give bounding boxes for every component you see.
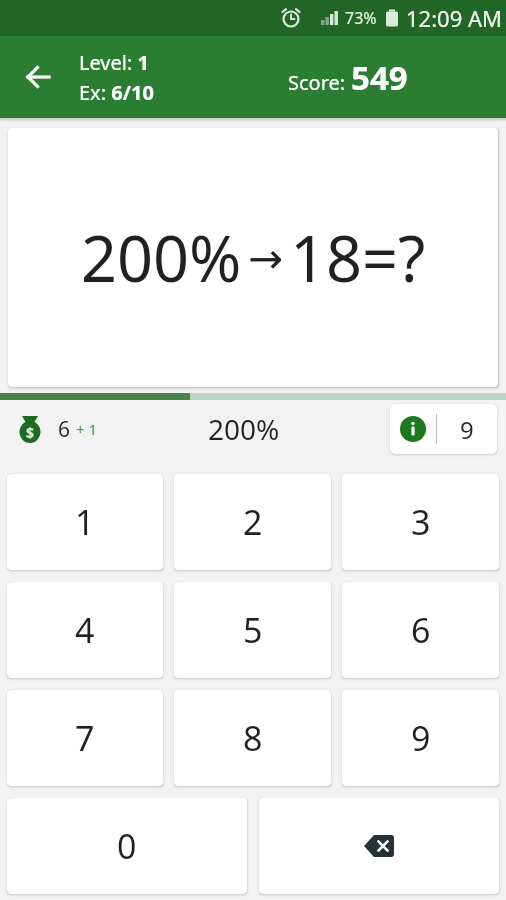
staticText: 4 bbox=[75, 607, 95, 653]
button[interactable]: 2 bbox=[174, 474, 331, 570]
staticText: 549 bbox=[351, 55, 408, 100]
staticText: 0 bbox=[117, 823, 137, 869]
button[interactable] bbox=[15, 53, 63, 101]
button[interactable]: 8 bbox=[174, 690, 331, 786]
staticText: + 1 bbox=[76, 419, 98, 439]
staticText: Score: bbox=[288, 69, 351, 96]
staticText: 1 bbox=[75, 499, 95, 545]
staticText: $ bbox=[26, 423, 35, 442]
button[interactable]: 7 bbox=[7, 690, 163, 786]
staticText: 3 bbox=[411, 499, 431, 545]
button[interactable]: 0 bbox=[7, 798, 247, 894]
staticText: → bbox=[248, 234, 284, 283]
staticText: 200% bbox=[208, 410, 280, 448]
staticText: 73% bbox=[345, 7, 377, 29]
staticText: 9 bbox=[460, 413, 474, 446]
staticText: 18=? bbox=[290, 215, 426, 301]
button[interactable]: 5 bbox=[174, 582, 331, 678]
staticText: 6 bbox=[411, 607, 431, 653]
button[interactable]: 3 bbox=[342, 474, 499, 570]
button[interactable]: 9 bbox=[390, 404, 497, 454]
staticText: 8 bbox=[243, 715, 263, 761]
staticText: 6 bbox=[58, 415, 71, 444]
staticText: 9 bbox=[411, 715, 431, 761]
button[interactable]: 4 bbox=[7, 582, 163, 678]
staticText: 12:09 AM bbox=[406, 3, 502, 33]
button[interactable] bbox=[259, 798, 499, 894]
staticText: 200% bbox=[81, 215, 242, 301]
staticText: 5 bbox=[243, 607, 263, 653]
staticText: Level: 1 bbox=[79, 49, 149, 76]
staticText: 7 bbox=[75, 715, 95, 761]
staticText: Ex: 6/10 bbox=[79, 79, 154, 106]
button[interactable]: 1 bbox=[7, 474, 163, 570]
button[interactable]: 6 bbox=[342, 582, 499, 678]
staticText: 2 bbox=[243, 499, 263, 545]
button[interactable]: 9 bbox=[342, 690, 499, 786]
